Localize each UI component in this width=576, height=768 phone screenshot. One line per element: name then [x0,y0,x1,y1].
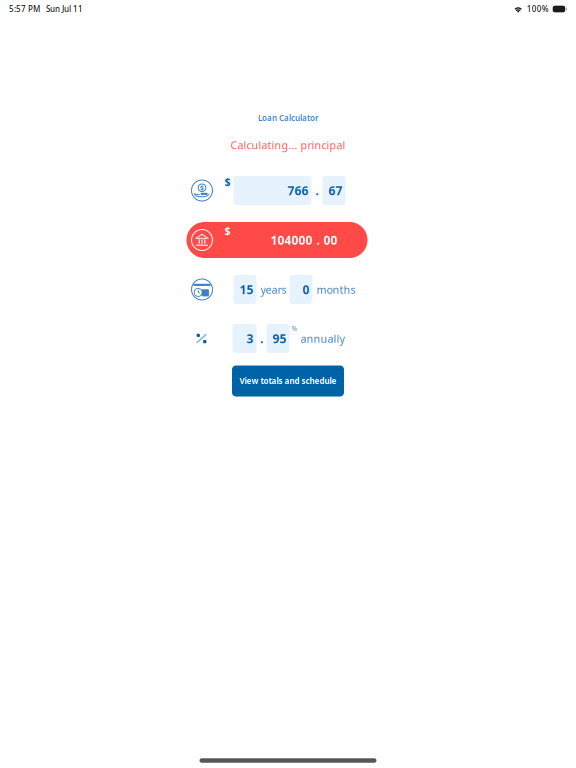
staticText: Calculating... principal [230,138,345,152]
button[interactable]: Loan Calculator [250,108,326,128]
staticText: annually [300,331,344,346]
staticText: Loan Calculator [258,113,318,123]
button[interactable]: Interest rate 3.95 percent annually [186,320,367,356]
staticText: $ [224,174,230,189]
staticText: % [291,324,297,333]
button[interactable]: Monthly payment 766 dollars 67 cents [186,172,367,208]
staticText: $ [224,223,230,238]
staticText: months [316,282,355,297]
staticText: 100% [527,4,549,14]
staticText: $ [200,183,204,192]
button[interactable]: Loan term 15 years 0 months [186,271,367,307]
staticText: 95 [272,330,286,346]
button[interactable]: View totals and schedule [232,365,344,396]
staticText: years [260,282,286,297]
staticText: 67 [328,182,342,198]
staticText: 104000 [270,232,312,248]
staticText: 0 [302,281,309,297]
staticText: 3 [246,330,253,346]
staticText: 00 [323,232,337,248]
staticText: View totals and schedule [239,376,336,386]
staticText: . [260,330,263,346]
button[interactable]: Loan principal 104000 dollars [186,222,367,258]
staticText: 766 [287,182,308,198]
staticText: 5:57 PM [9,4,40,14]
staticText: . [315,182,318,198]
staticText: 15 [239,281,253,297]
staticText: . [316,232,319,248]
staticText: Sun Jul 11 [46,4,83,14]
